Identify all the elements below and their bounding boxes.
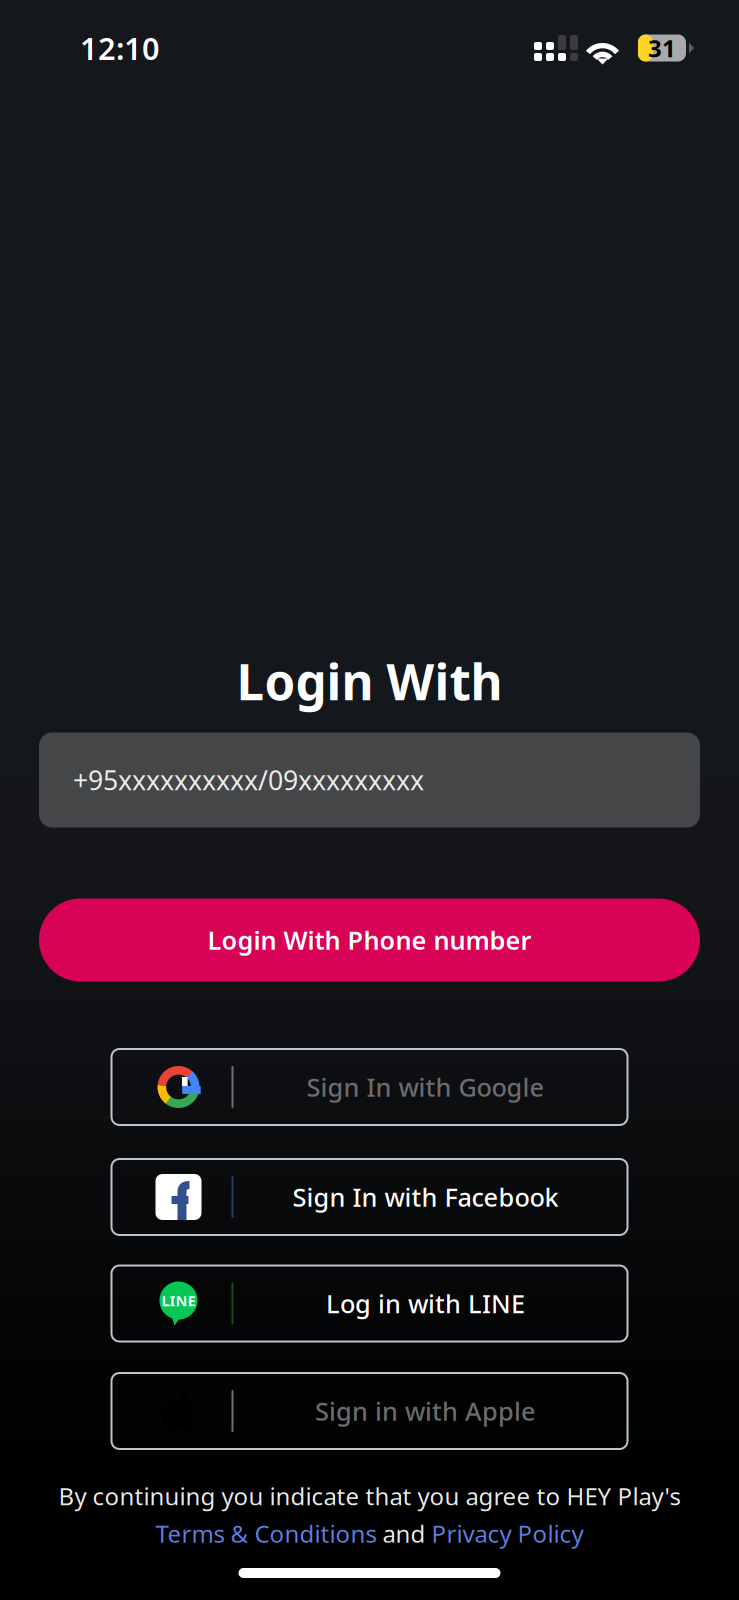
- button[interactable]: Terms & Conditions: [155, 1518, 376, 1549]
- staticText: LINE: [161, 1291, 195, 1310]
- staticText: Login With: [236, 648, 502, 714]
- staticText: and: [376, 1518, 431, 1549]
- button[interactable]: Login With Phone number: [39, 898, 700, 981]
- button[interactable]: Sign In with Facebook: [111, 1159, 627, 1235]
- staticText: Terms & Conditions: [155, 1518, 376, 1549]
- staticText: Log in with LINE: [326, 1287, 525, 1320]
- staticText: Sign In with Google: [306, 1070, 544, 1104]
- button[interactable]: Sign in with Apple: [111, 1373, 627, 1449]
- staticText: Sign In with Facebook: [292, 1180, 558, 1214]
- staticText: By continuing you indicate that you agre…: [58, 1480, 680, 1512]
- staticText: 31: [648, 32, 676, 64]
- staticText: Privacy Policy: [431, 1518, 583, 1549]
- button[interactable]: Log in with LINE: [111, 1265, 627, 1341]
- staticText: 12:10: [80, 28, 160, 68]
- button[interactable]: Privacy Policy: [431, 1518, 583, 1549]
- staticText: +95xxxxxxxxxx/09xxxxxxxxx: [73, 762, 424, 798]
- button[interactable]: Sign In with Google: [111, 1049, 627, 1125]
- staticText: Login With Phone number: [207, 923, 531, 957]
- staticText: Sign in with Apple: [315, 1394, 536, 1428]
